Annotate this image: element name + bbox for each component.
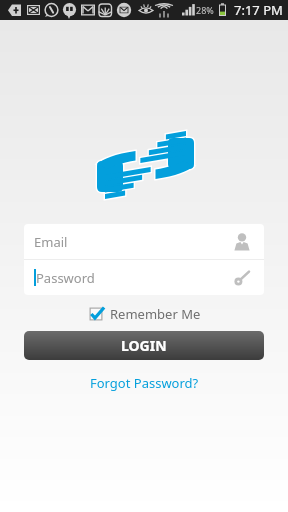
button[interactable]: Password [24,260,264,295]
button[interactable]: Remember Me [87,305,201,323]
button[interactable]: Forgot Password? [90,374,199,392]
staticText: Remember Me [110,305,201,323]
button[interactable]: Email [24,224,264,259]
button[interactable]: LOGIN [24,331,264,360]
staticText: Email [34,233,68,251]
staticText: 7:17 PM [234,1,283,19]
staticText: LOGIN [121,336,167,355]
staticText: 28% [196,4,214,16]
staticText: Password [36,269,95,287]
